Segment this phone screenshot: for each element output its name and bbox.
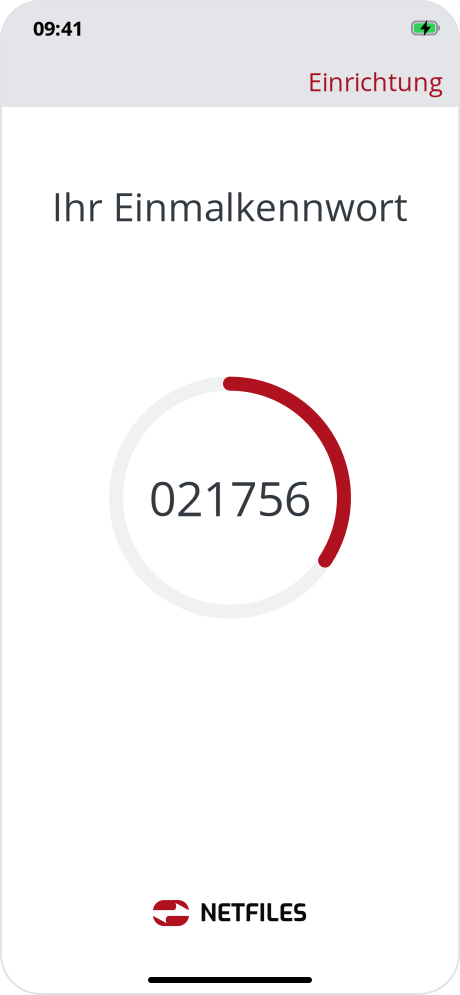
- staticText: Ihr Einmalkennwort: [52, 180, 408, 233]
- staticText: NETFILES: [200, 897, 307, 929]
- button[interactable]: Einrichtung: [300, 58, 451, 105]
- staticText: 09:41: [33, 14, 83, 42]
- staticText: Einrichtung: [308, 64, 443, 99]
- staticText: 021756: [149, 465, 311, 530]
